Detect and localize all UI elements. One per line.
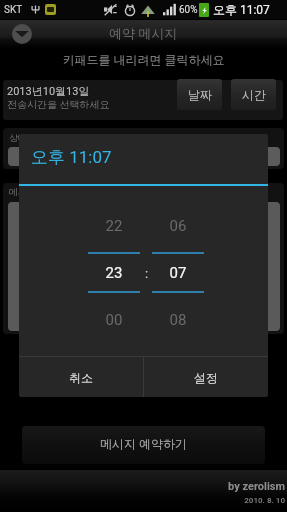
staticText: 00	[88, 311, 140, 329]
staticText: 오후 11:07	[213, 2, 270, 17]
staticText: 22	[88, 217, 140, 235]
button[interactable]: Back	[12, 24, 32, 44]
staticText: 전송시간을 선택하세요	[7, 98, 110, 111]
button[interactable]: 메시지 예약하기	[22, 426, 265, 464]
staticText: 날짜	[188, 87, 212, 102]
staticText: 취소	[69, 370, 93, 385]
staticText: 2013년10월13일	[7, 84, 90, 98]
staticText: :	[145, 266, 149, 281]
staticText: 23	[88, 264, 140, 282]
button[interactable]: 날짜	[177, 79, 222, 110]
staticText: 오후 11:07	[31, 147, 112, 168]
staticText: 60%	[179, 4, 198, 16]
staticText: 2010. 8. 10	[0, 496, 285, 505]
staticText: 메시지 예약하기	[100, 436, 187, 451]
button[interactable]: 취소	[19, 357, 143, 397]
staticText: 시간	[242, 87, 266, 102]
staticText: 06	[152, 217, 204, 235]
staticText: 08	[152, 311, 204, 329]
staticText: by zerolism	[0, 480, 285, 493]
staticText: SKT	[4, 4, 23, 16]
button[interactable]: 시간	[231, 79, 276, 110]
staticText: 키패드를 내리려면 클릭하세요	[0, 52, 287, 67]
staticText: 07	[152, 264, 204, 282]
staticText: 상대방	[9, 132, 36, 143]
staticText: 예약 메시지	[109, 25, 178, 41]
staticText: 메시지	[9, 186, 36, 197]
staticText: 설정	[194, 370, 218, 385]
button[interactable]: 설정	[144, 357, 268, 397]
